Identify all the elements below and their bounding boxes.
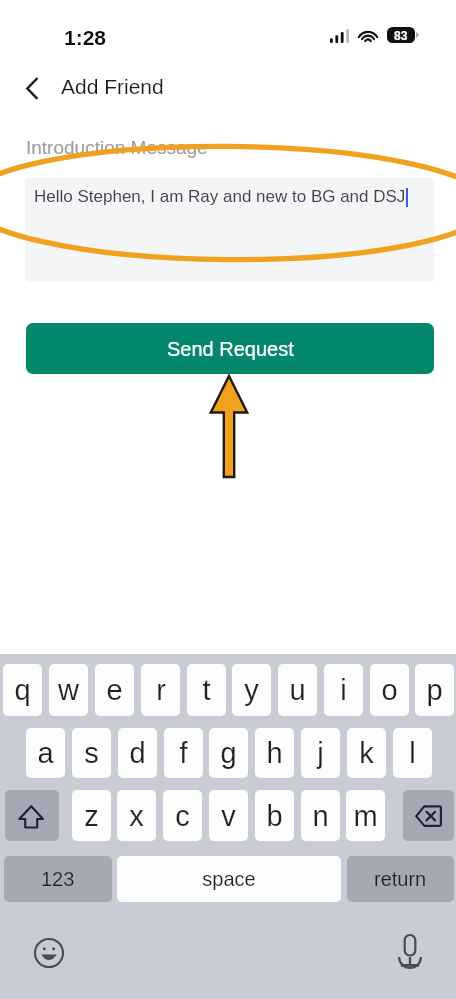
button[interactable]: Hello Stephen, I am Ray and new to BG an… [25, 178, 434, 282]
staticText: z [84, 800, 99, 832]
staticText: c [175, 800, 190, 832]
button[interactable]: p [415, 664, 454, 716]
staticText: return [374, 868, 427, 890]
staticText: v [221, 800, 236, 832]
staticText: t [202, 674, 211, 706]
staticText: Send Request [167, 338, 294, 360]
button[interactable]: o [370, 664, 409, 716]
button[interactable]: j [301, 728, 340, 778]
staticText: a [37, 737, 54, 769]
staticText: k [359, 737, 374, 769]
staticText: 83 [394, 29, 408, 42]
staticText: o [381, 674, 398, 706]
staticText: w [58, 674, 79, 706]
button[interactable]: d [118, 728, 157, 778]
staticText: l [409, 737, 416, 769]
staticText: r [156, 674, 166, 706]
button[interactable]: t [187, 664, 226, 716]
button[interactable]: Shift [5, 790, 59, 841]
staticText: q [14, 674, 31, 706]
staticText: m [353, 800, 378, 832]
button[interactable]: w [49, 664, 88, 716]
button[interactable]: return [347, 856, 454, 902]
staticText: h [266, 737, 283, 769]
staticText: Introduction Message [26, 137, 208, 158]
button[interactable]: k [347, 728, 386, 778]
button[interactable]: u [278, 664, 317, 716]
button[interactable]: Send Request [26, 323, 434, 374]
staticText: p [426, 674, 443, 706]
staticText: f [179, 737, 188, 769]
button[interactable]: 123 [4, 856, 112, 902]
button[interactable]: i [324, 664, 363, 716]
button[interactable]: h [255, 728, 294, 778]
button[interactable]: Emoji keyboard [31, 935, 67, 971]
button[interactable]: y [232, 664, 271, 716]
button[interactable]: c [163, 790, 202, 841]
button[interactable]: r [141, 664, 180, 716]
staticText: e [106, 674, 123, 706]
staticText: space [202, 868, 256, 890]
button[interactable]: q [3, 664, 42, 716]
staticText: x [129, 800, 144, 832]
button[interactable]: m [346, 790, 385, 841]
staticText: u [289, 674, 306, 706]
button[interactable]: v [209, 790, 248, 841]
staticText: g [220, 737, 237, 769]
staticText: b [266, 800, 283, 832]
staticText: j [317, 737, 324, 769]
staticText: 1:28 [64, 26, 107, 49]
button[interactable]: a [26, 728, 65, 778]
staticText: d [129, 737, 146, 769]
button[interactable]: s [72, 728, 111, 778]
staticText: s [84, 737, 99, 769]
button[interactable]: b [255, 790, 294, 841]
staticText: Hello Stephen, I am Ray and new to BG an… [34, 187, 406, 206]
staticText: n [312, 800, 329, 832]
button[interactable]: f [164, 728, 203, 778]
button[interactable]: Backspace [403, 790, 454, 841]
button[interactable]: space [117, 856, 341, 902]
staticText: y [244, 674, 259, 706]
button[interactable]: Voice input [391, 931, 429, 969]
button[interactable]: n [301, 790, 340, 841]
button[interactable]: e [95, 664, 134, 716]
button[interactable]: Back [14, 73, 48, 103]
button[interactable]: l [393, 728, 432, 778]
staticText: Add Friend [61, 75, 164, 98]
staticText: 123 [41, 868, 75, 890]
staticText: i [340, 674, 347, 706]
button[interactable]: x [117, 790, 156, 841]
button[interactable]: g [209, 728, 248, 778]
button[interactable]: z [72, 790, 111, 841]
